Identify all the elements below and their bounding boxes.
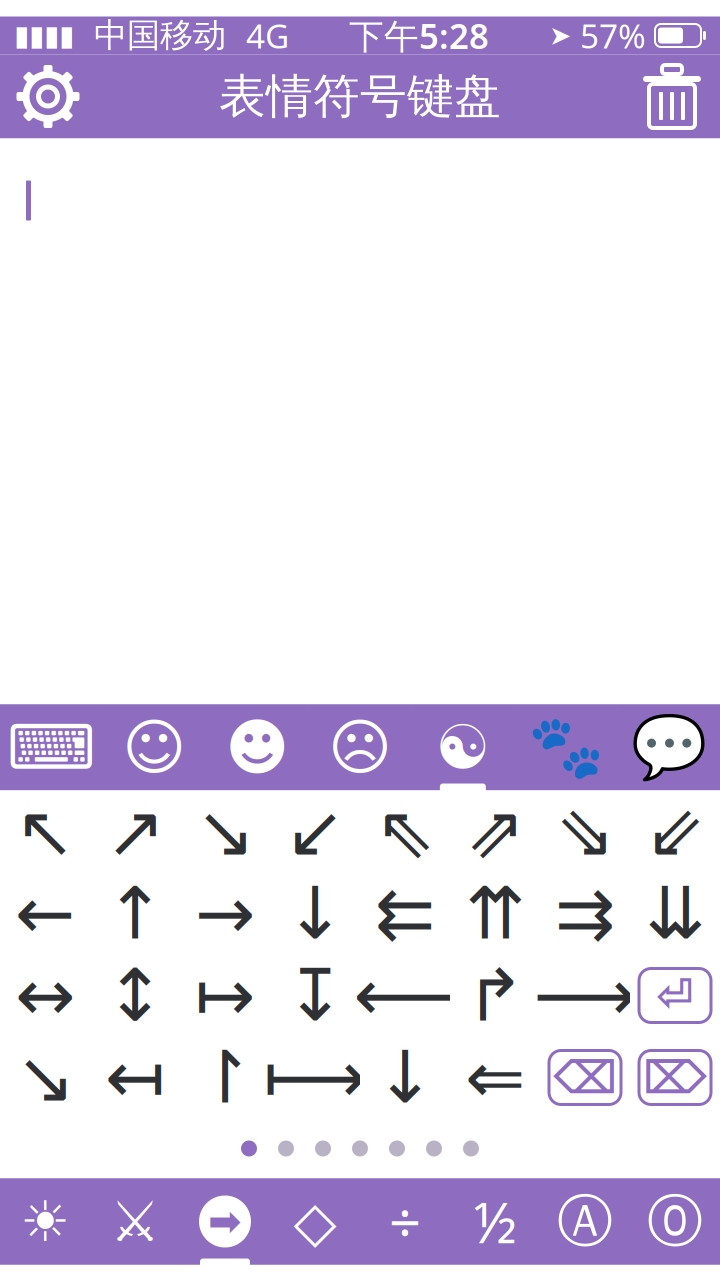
button[interactable]: Settings — [0, 54, 96, 138]
button[interactable]: Symbol ⌫ — [540, 1036, 630, 1118]
button[interactable]: Category 5 — [411, 704, 514, 790]
button[interactable]: Symbol ↾ — [180, 1036, 270, 1118]
staticText: ↱ — [465, 955, 525, 1036]
button[interactable]: Category 7 — [617, 704, 720, 790]
staticText: ▮▮▮▮ — [14, 20, 74, 51]
staticText: → — [195, 873, 255, 954]
button[interactable]: Symbol ⇉ — [540, 872, 630, 954]
button[interactable]: Category 4 — [309, 704, 411, 790]
staticText: ☺ — [122, 713, 186, 782]
button[interactable]: Symbol ← — [0, 872, 90, 954]
staticText: ↖ — [15, 791, 75, 872]
button[interactable]: Symbol ↤ — [90, 1036, 180, 1118]
staticText: 57% — [571, 13, 655, 58]
staticText: ⏎ — [656, 970, 694, 1021]
staticText: ↧ — [285, 955, 345, 1036]
button[interactable]: Symbol ⇇ — [360, 872, 450, 954]
button[interactable]: Symbol ⟶ — [540, 954, 630, 1036]
staticText: ↦ — [195, 955, 255, 1036]
staticText: ↾ — [195, 1037, 255, 1118]
staticText: ⇐ — [465, 1037, 525, 1118]
staticText: ⇇ — [375, 873, 435, 954]
button[interactable]: Symbol ↔ — [0, 954, 90, 1036]
button[interactable]: Symbol ↱ — [450, 954, 540, 1036]
button[interactable]: Symbol → — [180, 872, 270, 954]
button[interactable]: Category 2 — [103, 704, 206, 790]
button[interactable]: Tool 8 — [630, 1178, 720, 1264]
staticText: ↤ — [105, 1037, 165, 1118]
staticText: ⇘ — [555, 791, 615, 872]
button[interactable]: Symbol ↕ — [90, 954, 180, 1036]
staticText: ↔ — [15, 955, 75, 1036]
button[interactable]: Symbol ⇈ — [450, 872, 540, 954]
button[interactable]: Symbol ↙ — [270, 790, 360, 872]
button[interactable]: Category 1 — [0, 704, 103, 790]
staticText: ⟼ — [263, 1037, 366, 1118]
staticText: ☹ — [328, 713, 392, 782]
staticText: ÷ — [389, 1184, 421, 1259]
button[interactable]: Symbol ⇘ — [540, 790, 630, 872]
button[interactable]: Symbol ↘ — [180, 790, 270, 872]
staticText: ↘ — [15, 1037, 75, 1118]
staticText: ↘ — [195, 791, 255, 872]
button[interactable]: Symbol ⌦ — [630, 1036, 720, 1118]
button[interactable]: Symbol ⟵ — [360, 954, 450, 1036]
button[interactable]: Category 3 — [206, 704, 309, 790]
staticText: ↕ — [105, 955, 165, 1036]
staticText: ⇉ — [555, 873, 615, 954]
staticText: ⓪ — [647, 1187, 703, 1256]
staticText: Ⓐ — [557, 1187, 613, 1256]
staticText: ☻ — [225, 713, 289, 782]
staticText: ↙ — [285, 791, 345, 872]
button[interactable]: Symbol ⇙ — [630, 790, 720, 872]
button[interactable]: Symbol ⏎ — [630, 954, 720, 1036]
staticText: ➤ — [549, 20, 571, 51]
staticText: 中国移动 — [74, 15, 246, 56]
button[interactable]: Symbol ↘ — [0, 1036, 90, 1118]
button[interactable]: Tool 1 — [0, 1178, 90, 1264]
button[interactable]: Symbol ↗ — [90, 790, 180, 872]
staticText: ⌨ — [7, 713, 96, 782]
staticText: ➡ — [208, 1199, 242, 1244]
button[interactable]: Symbol ⇊ — [630, 872, 720, 954]
staticText: ½ — [473, 1184, 516, 1259]
staticText: ↗ — [105, 791, 165, 872]
staticText: 下午5:28 — [349, 12, 489, 58]
staticText: ⇙ — [645, 791, 705, 872]
staticText: ⚔ — [110, 1190, 160, 1253]
button[interactable]: Tool 3 — [180, 1178, 270, 1264]
staticText: ☀ — [20, 1190, 70, 1253]
staticText: ↓ — [285, 873, 345, 954]
button[interactable]: Symbol ↓ — [360, 1036, 450, 1118]
button[interactable]: Clear text — [624, 54, 720, 138]
staticText: ↑ — [105, 873, 165, 954]
staticText: ⇊ — [645, 873, 705, 954]
staticText: 🐾 — [528, 712, 604, 783]
button[interactable]: Tool 2 — [90, 1178, 180, 1264]
staticText: ⟶ — [533, 955, 636, 1036]
button[interactable]: Symbol ⇖ — [360, 790, 450, 872]
staticText: ⟵ — [353, 955, 456, 1036]
button[interactable]: Symbol ⟼ — [270, 1036, 360, 1118]
staticText: ☯ — [435, 713, 490, 782]
staticText: ◇ — [293, 1190, 336, 1253]
staticText: 表情符号键盘 — [219, 68, 501, 125]
staticText: ⌦ — [643, 1052, 707, 1103]
button[interactable]: Symbol ↑ — [90, 872, 180, 954]
button[interactable]: Tool 7 — [540, 1178, 630, 1264]
button[interactable]: Tool 5 — [360, 1178, 450, 1264]
button[interactable]: Symbol ↖ — [0, 790, 90, 872]
button[interactable]: Symbol ⇗ — [450, 790, 540, 872]
staticText: 4G — [246, 13, 289, 58]
staticText: ⇖ — [375, 791, 435, 872]
button[interactable]: Symbol ↓ — [270, 872, 360, 954]
staticText: ⇈ — [465, 873, 525, 954]
staticText: ⌫ — [553, 1052, 617, 1103]
staticText: ← — [15, 873, 75, 954]
button[interactable]: Symbol ⇐ — [450, 1036, 540, 1118]
button[interactable]: Symbol ↦ — [180, 954, 270, 1036]
button[interactable]: Symbol ↧ — [270, 954, 360, 1036]
button[interactable]: Category 6 — [514, 704, 617, 790]
button[interactable]: Tool 4 — [270, 1178, 360, 1264]
button[interactable]: Tool 6 — [450, 1178, 540, 1264]
